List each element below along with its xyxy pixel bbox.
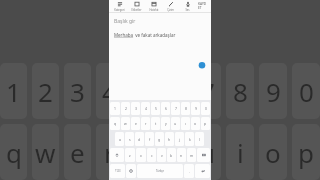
button[interactable]: Emoji [126, 164, 136, 178]
staticText: t [155, 121, 157, 126]
staticText: f [149, 137, 151, 142]
button[interactable]: w [121, 117, 130, 130]
button[interactable]: t [151, 117, 160, 130]
button[interactable]: g [155, 132, 164, 146]
staticText: g [158, 137, 161, 142]
button[interactable]: 6 [161, 102, 170, 115]
staticText: ?123 [115, 169, 121, 173]
button[interactable]: 5 [151, 102, 160, 115]
staticText: 7 [200, 74, 215, 109]
staticText: 3 [135, 106, 137, 111]
button[interactable]: c [147, 148, 156, 162]
staticText: l [199, 137, 200, 142]
staticText: v [161, 153, 163, 158]
button[interactable]: q [110, 117, 120, 130]
staticText: x [140, 153, 142, 158]
staticText: 1 [114, 106, 116, 111]
staticText: Ses [185, 8, 190, 12]
button[interactable]: 0 [201, 102, 210, 115]
button[interactable]: l [195, 132, 204, 146]
button[interactable]: KAYDET [196, 0, 209, 12]
button[interactable]: n [177, 148, 186, 162]
button[interactable]: Etiketler [128, 0, 145, 12]
staticText: Etiketler [131, 8, 142, 12]
button[interactable]: 7 [171, 102, 180, 115]
staticText: r [145, 121, 147, 126]
staticText: j [179, 137, 180, 142]
staticText: 4 [145, 106, 147, 111]
button[interactable]: 1 [110, 102, 120, 115]
staticText: 3 [70, 74, 85, 109]
staticText: e [70, 135, 85, 170]
button[interactable]: b [167, 148, 176, 162]
button[interactable]: Shift [110, 148, 124, 162]
button[interactable]: u [171, 117, 180, 130]
button[interactable]: 2 [121, 102, 130, 115]
staticText: o [194, 121, 197, 126]
staticText: q [6, 135, 22, 170]
staticText: h [168, 137, 171, 142]
staticText: p [298, 135, 314, 170]
button[interactable]: r [141, 117, 150, 130]
button[interactable]: o [191, 117, 200, 130]
button[interactable]: Çizim [162, 0, 179, 12]
staticText: 0 [299, 74, 314, 109]
button[interactable]: Kategori [111, 0, 128, 12]
staticText: 1 [6, 74, 21, 109]
button[interactable]: a [115, 132, 124, 146]
staticText: k [189, 137, 191, 142]
staticText: ve fakat arkadaşlar [134, 32, 176, 38]
staticText: t [137, 135, 147, 170]
staticText: w [35, 135, 56, 170]
staticText: Başlık gir [114, 18, 136, 25]
staticText: w [124, 121, 127, 126]
button[interactable]: 9 [191, 102, 200, 115]
staticText: 2 [38, 74, 53, 109]
staticText: KAYDET [198, 2, 207, 10]
staticText: Merhaba [114, 32, 134, 38]
staticText: 6 [165, 106, 167, 111]
staticText: r [104, 135, 115, 170]
button[interactable]: p [201, 117, 210, 130]
button[interactable]: d [135, 132, 144, 146]
button[interactable]: v [157, 148, 166, 162]
button[interactable]: Enter [195, 164, 210, 178]
button[interactable]: 3 [131, 102, 140, 115]
staticText: 5 [155, 106, 157, 111]
button[interactable]: Space [137, 164, 183, 178]
button[interactable]: s [125, 132, 134, 146]
button[interactable]: ı [181, 117, 190, 130]
staticText: Türkçe [156, 169, 165, 173]
button[interactable]: k [185, 132, 194, 146]
staticText: s [129, 137, 131, 142]
button[interactable]: ?123 [110, 164, 125, 178]
staticText: 6 [167, 74, 182, 109]
button[interactable]: Hatırlat [145, 0, 162, 12]
staticText: 2 [125, 106, 127, 111]
staticText: n [180, 153, 183, 158]
button[interactable]: 8 [181, 102, 190, 115]
staticText: u [174, 121, 177, 126]
staticText: 9 [195, 106, 197, 111]
staticText: b [170, 153, 173, 158]
button[interactable]: e [131, 117, 140, 130]
staticText: ı [185, 121, 186, 126]
staticText: m [190, 153, 194, 158]
button[interactable]: m [187, 148, 196, 162]
button[interactable]: j [175, 132, 184, 146]
staticText: . [189, 169, 190, 174]
button[interactable]: y [161, 117, 170, 130]
button[interactable]: Ses [179, 0, 196, 12]
button[interactable]: Backspace [197, 148, 210, 162]
staticText: y [165, 121, 167, 126]
button[interactable]: h [165, 132, 174, 146]
button[interactable]: 4 [141, 102, 150, 115]
button[interactable]: x [136, 148, 146, 162]
staticText: 8 [185, 106, 187, 111]
button[interactable]: z [125, 148, 135, 162]
staticText: d [138, 137, 141, 142]
button[interactable]: f [145, 132, 154, 146]
staticText: i [237, 135, 244, 170]
staticText: a [119, 137, 121, 142]
